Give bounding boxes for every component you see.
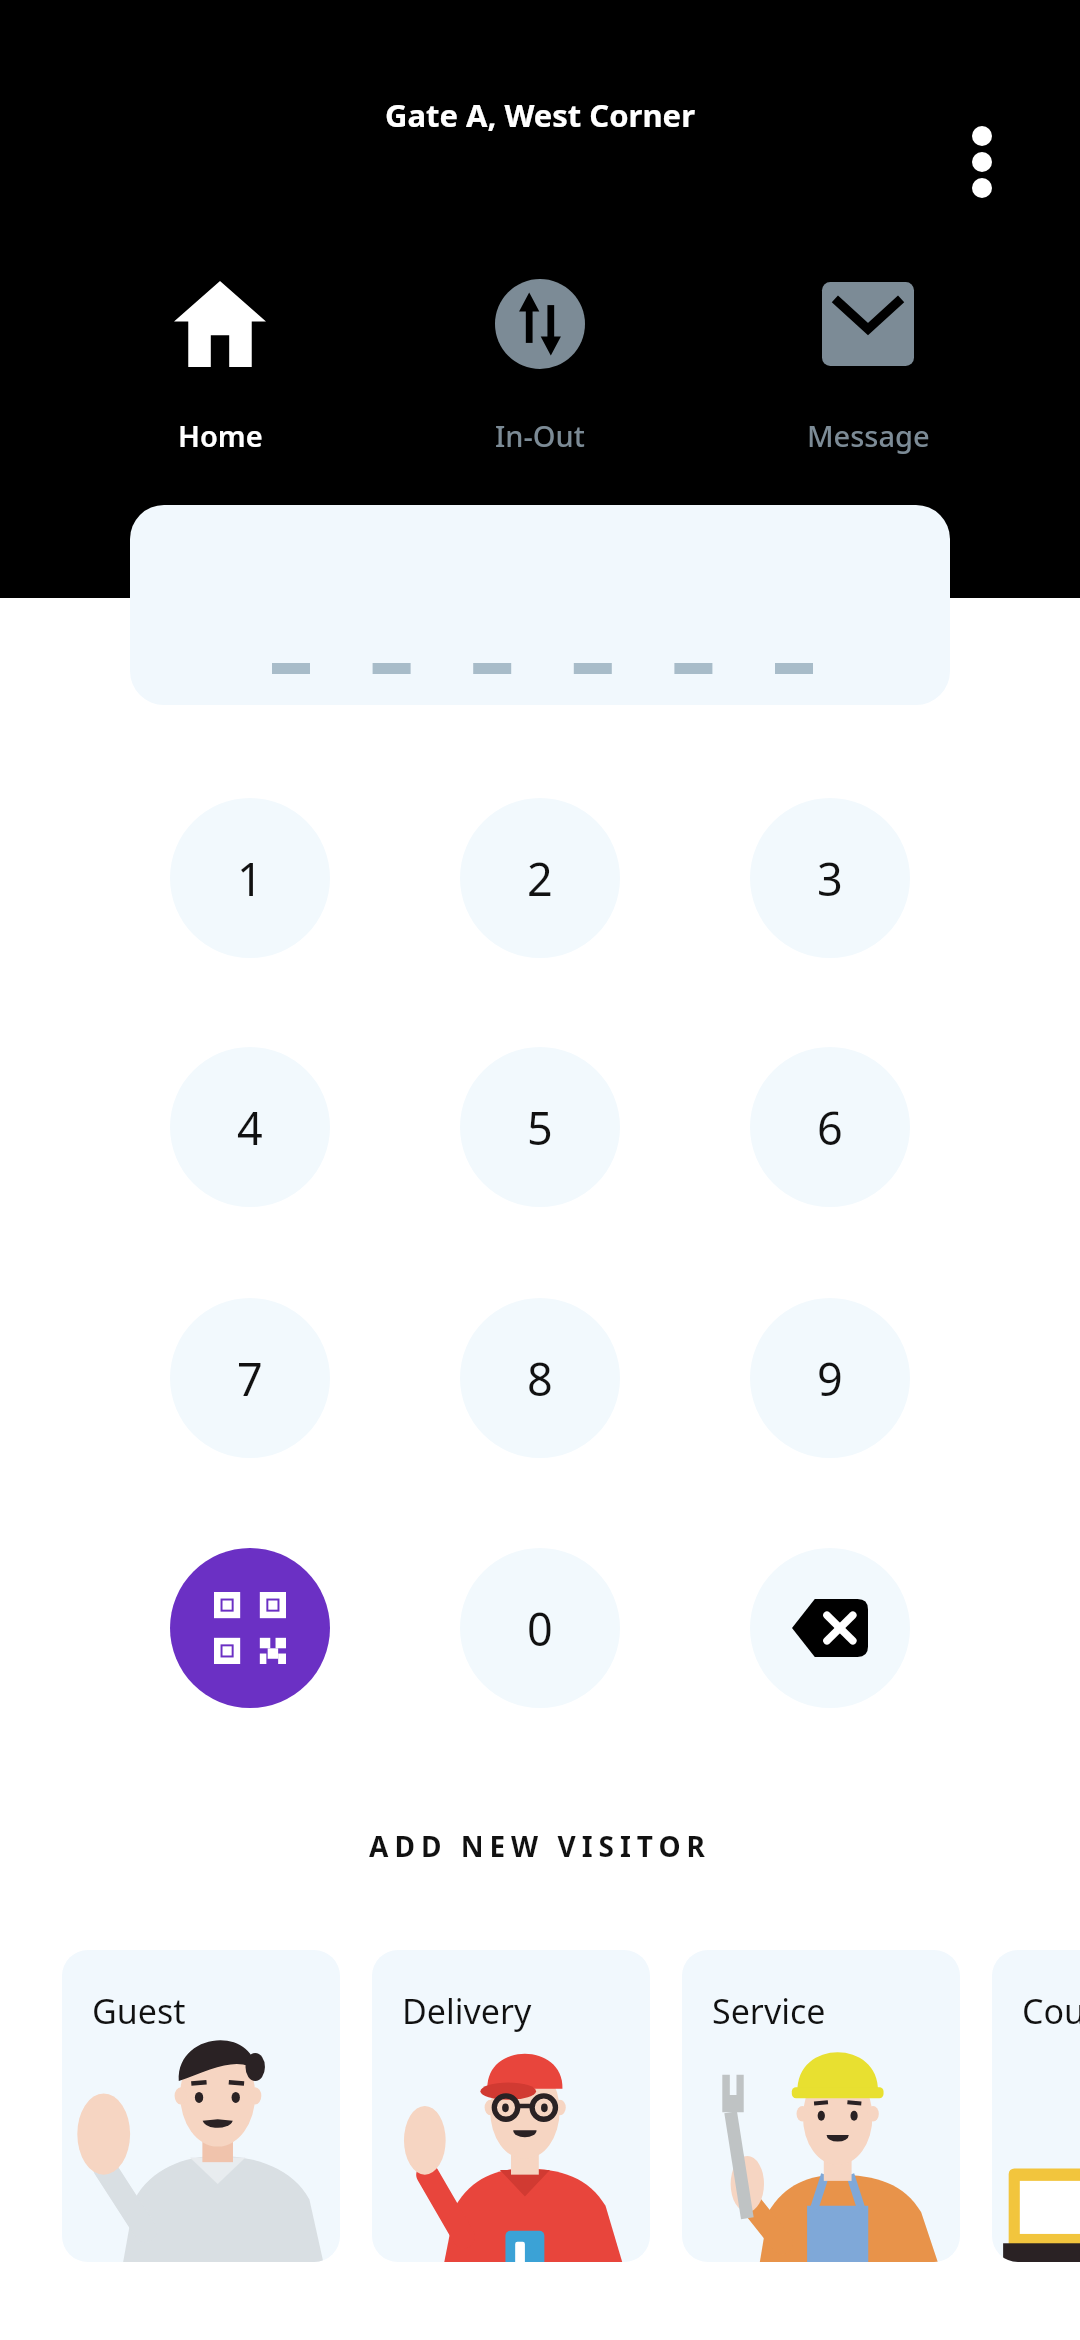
button[interactable]: 6 [750,1047,910,1207]
staticText: Home [178,416,263,455]
staticText: 7 [237,1348,263,1409]
staticText: Courier [1022,1988,1080,2034]
staticText: 5 [527,1097,553,1158]
staticText: In-Out [495,416,585,455]
staticText: 1 [237,848,263,909]
staticText: 3 [817,848,843,909]
button[interactable]: 2 [460,798,620,958]
button[interactable] [130,505,950,705]
button[interactable]: Delivery [372,1950,650,2262]
button[interactable]: Service [682,1950,960,2262]
button[interactable]: 0 [460,1548,620,1708]
staticText: Service [712,1988,826,2034]
staticText: 9 [817,1348,843,1409]
button[interactable]: Message [718,262,1018,492]
staticText: 0 [527,1598,553,1659]
button[interactable]: Backspace [750,1548,910,1708]
button[interactable]: Scan QR code [170,1548,330,1708]
staticText: 2 [527,848,553,909]
button[interactable]: Courier [992,1950,1080,2262]
button[interactable]: 8 [460,1298,620,1458]
button[interactable]: 5 [460,1047,620,1207]
staticText: Gate A, West Corner [385,94,695,136]
staticText: Guest [92,1988,186,2034]
button[interactable]: More options [940,112,1024,212]
staticText: Delivery [402,1988,532,2034]
button[interactable]: Guest [62,1950,340,2262]
staticText: 8 [527,1348,553,1409]
button[interactable]: 9 [750,1298,910,1458]
staticText: 4 [237,1097,263,1158]
button[interactable]: In-Out [390,262,690,492]
button[interactable]: 1 [170,798,330,958]
staticText: ADD NEW VISITOR [369,1827,711,1865]
button[interactable]: Home [70,262,370,492]
button[interactable]: 7 [170,1298,330,1458]
staticText: 6 [817,1097,843,1158]
button[interactable]: 4 [170,1047,330,1207]
staticText: Message [807,416,930,455]
button[interactable]: 3 [750,798,910,958]
